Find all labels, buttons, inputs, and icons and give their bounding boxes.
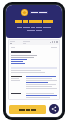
button[interactable]: Share bbox=[49, 104, 59, 114]
button[interactable] bbox=[9, 105, 46, 114]
